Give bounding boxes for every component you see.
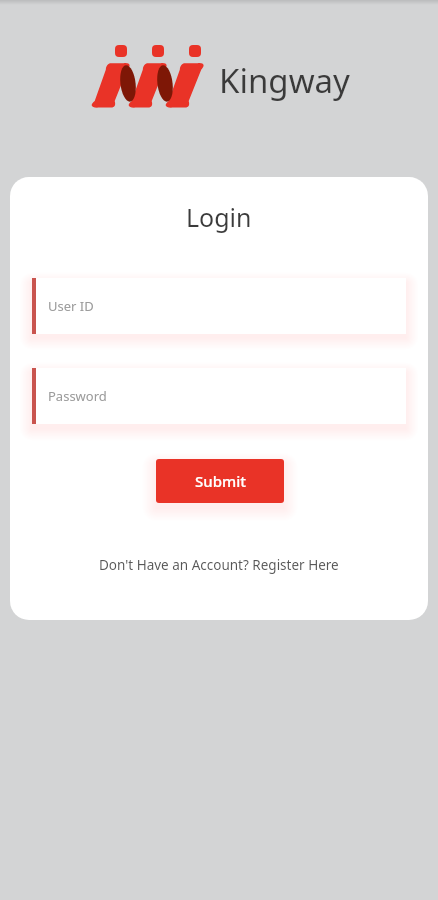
staticText: Submit: [195, 471, 246, 491]
button[interactable]: User ID: [32, 278, 406, 334]
button[interactable]: Don't Have an Account? Register Here: [91, 551, 347, 579]
staticText: Don't Have an Account? Register Here: [99, 556, 339, 574]
staticText: Password: [48, 387, 107, 405]
button[interactable]: Submit: [156, 459, 284, 503]
staticText: User ID: [48, 297, 94, 315]
button[interactable]: Password: [32, 368, 406, 424]
staticText: Kingway: [219, 58, 350, 103]
staticText: Login: [186, 200, 252, 234]
